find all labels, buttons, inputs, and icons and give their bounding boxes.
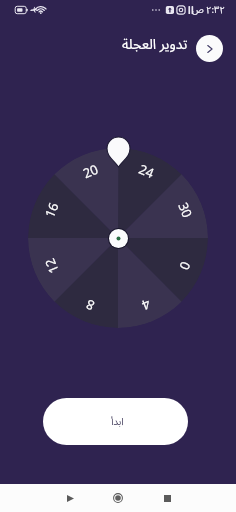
staticText: 24 bbox=[136, 160, 157, 182]
staticText: 4 bbox=[139, 295, 153, 315]
staticText: ٢:٣٢ bbox=[206, 0, 225, 20]
staticText: ص bbox=[192, 1, 204, 20]
button[interactable]: Home bbox=[94, 484, 142, 512]
staticText: 0 bbox=[175, 259, 195, 273]
staticText: 12 bbox=[40, 256, 63, 276]
button[interactable]: ابدأ bbox=[43, 398, 188, 445]
staticText: تدوير العجلة bbox=[122, 30, 188, 60]
button[interactable]: Back bbox=[46, 484, 94, 512]
staticText: 16 bbox=[40, 200, 63, 220]
staticText: 30 bbox=[174, 200, 197, 220]
button[interactable]: Next bbox=[196, 35, 223, 62]
button[interactable]: Recents bbox=[143, 484, 191, 512]
staticText: 20 bbox=[80, 160, 101, 182]
staticText: 8 bbox=[83, 295, 97, 315]
button[interactable]: Spin wheel bbox=[28, 148, 208, 328]
staticText: ابدأ bbox=[111, 411, 124, 432]
